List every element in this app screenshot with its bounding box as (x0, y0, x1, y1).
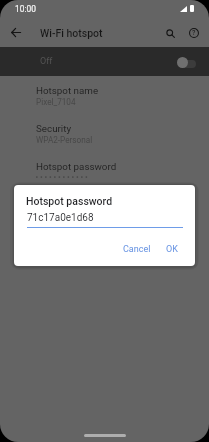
button[interactable]: Security (0, 115, 209, 151)
button[interactable]: Cancel (118, 240, 156, 259)
staticText: Hotspot password (36, 161, 117, 172)
button[interactable]: Back (5, 22, 26, 43)
button[interactable]: Search (159, 22, 181, 44)
staticText: WPA2-Personal (36, 135, 93, 145)
button[interactable]: OK (161, 240, 183, 259)
staticText: Off (40, 56, 53, 67)
staticText: Wi-Fi hotspot (40, 27, 103, 39)
staticText: Security (36, 123, 72, 134)
staticText: Hotspot name (36, 85, 99, 96)
staticText: Hotspot password (26, 195, 113, 207)
staticText: Pixel_7104 (36, 97, 76, 107)
staticText: Cancel (123, 244, 151, 255)
staticText: ? (192, 29, 196, 37)
staticText: OK (166, 244, 178, 255)
staticText: 71c17a0e1d68 (27, 212, 94, 224)
button[interactable]: Off (0, 47, 209, 76)
button[interactable]: Help (183, 22, 205, 44)
button[interactable]: Hotspot name (0, 77, 209, 113)
staticText: 10:00 (15, 4, 36, 14)
button[interactable]: Hotspot password (0, 153, 209, 189)
